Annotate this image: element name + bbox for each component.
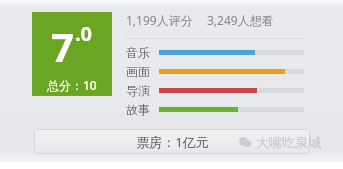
button[interactable]: 3,249人想看 xyxy=(207,12,274,28)
staticText: 画面 xyxy=(126,64,156,79)
other: 公众号水印 xyxy=(238,134,321,150)
staticText: 音乐 xyxy=(126,45,156,60)
button[interactable]: 音乐 xyxy=(126,45,312,60)
staticText: .0 xyxy=(75,20,93,47)
staticText: 票房：1亿元 xyxy=(136,133,209,151)
button[interactable]: 故事 xyxy=(126,102,312,117)
staticText: 故事 xyxy=(126,102,156,117)
button[interactable]: 票房：1亿元 xyxy=(34,129,310,154)
button[interactable]: 导演 xyxy=(126,83,312,98)
staticText: 大嘴吃泉城 xyxy=(256,134,321,150)
button[interactable]: 1,199人评分 xyxy=(126,12,193,28)
staticText: 总分：10 xyxy=(47,77,97,93)
staticText: 7 xyxy=(51,19,74,73)
staticText: 导演 xyxy=(126,83,156,98)
button[interactable]: 画面 xyxy=(126,64,312,79)
button[interactable]: 7 xyxy=(32,12,112,96)
